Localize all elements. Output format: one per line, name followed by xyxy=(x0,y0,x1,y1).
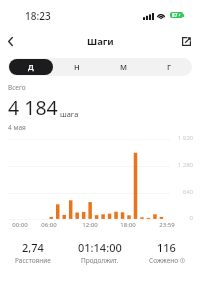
staticText: Шаги xyxy=(87,35,114,48)
staticText: 0 xyxy=(167,214,193,222)
staticText: Г xyxy=(167,62,172,72)
staticText: 18:23 xyxy=(25,9,51,23)
staticText: 12:00 xyxy=(76,221,104,229)
staticText: 2,74 xyxy=(22,240,44,255)
staticText: Н xyxy=(74,62,80,72)
button[interactable]: Г xyxy=(147,59,191,75)
button[interactable]: Back xyxy=(0,31,21,52)
staticText: 1 280 xyxy=(167,161,193,169)
staticText: 4 184 xyxy=(8,94,58,121)
staticText: шага xyxy=(60,109,79,119)
staticText: Всего xyxy=(8,83,26,92)
staticText: 1 920 xyxy=(167,134,193,142)
staticText: 18:00 xyxy=(114,221,142,229)
staticText: 23:59 xyxy=(153,221,181,229)
staticText: 00:00 xyxy=(6,221,34,229)
staticText: Сожжено xyxy=(149,256,179,265)
button[interactable]: М xyxy=(101,59,145,75)
button[interactable]: Д xyxy=(9,59,53,75)
staticText: 4 мая xyxy=(8,123,26,132)
button[interactable]: 01:14:00 xyxy=(66,239,133,266)
staticText: 87 xyxy=(172,12,178,18)
button[interactable]: Н xyxy=(55,59,99,75)
staticText: 06:00 xyxy=(35,221,63,229)
staticText: М xyxy=(120,62,127,72)
staticText: 116 xyxy=(157,240,176,255)
button[interactable]: Share xyxy=(176,31,196,51)
button[interactable]: 2,74 xyxy=(0,239,66,266)
staticText: Д xyxy=(28,62,34,72)
staticText: Продолжит. xyxy=(81,256,119,265)
staticText: 01:14:00 xyxy=(78,240,122,255)
staticText: 640 xyxy=(167,188,193,196)
button[interactable]: 116 xyxy=(133,239,200,266)
staticText: Расстояние xyxy=(15,256,51,265)
